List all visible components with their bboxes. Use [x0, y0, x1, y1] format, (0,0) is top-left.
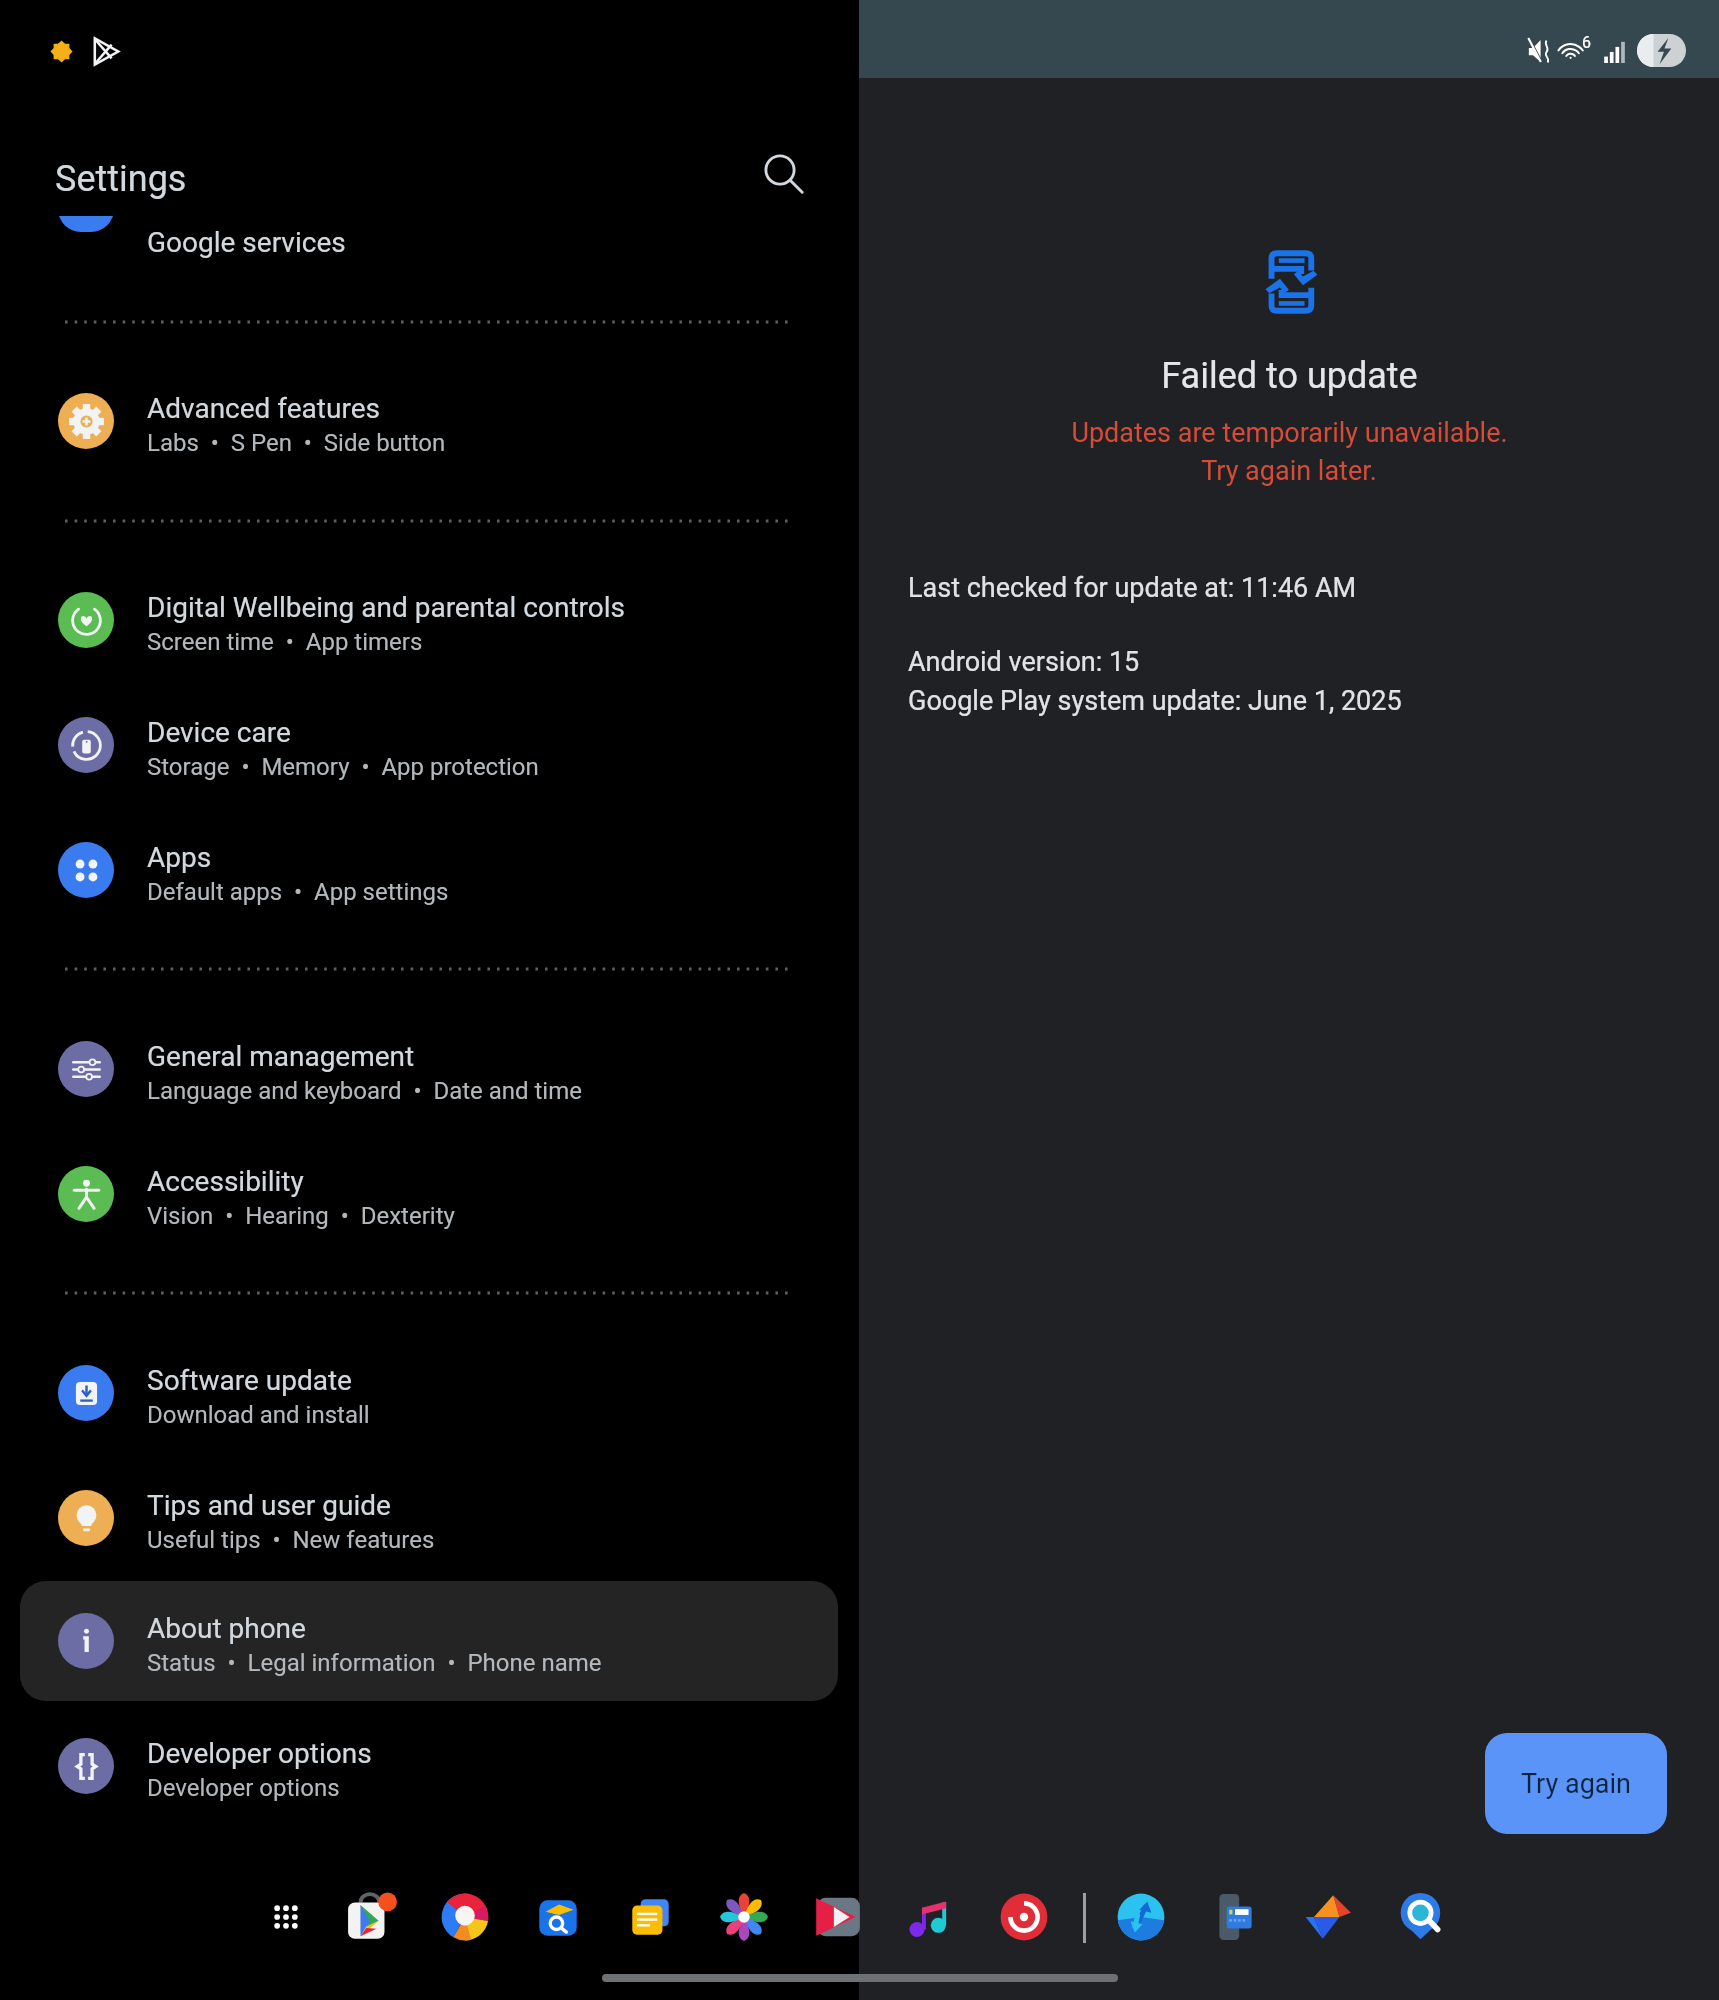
button[interactable]: Try again [1485, 1733, 1667, 1834]
button[interactable]: About phone [0, 1591, 859, 1691]
staticText: Tips and user guide [147, 1489, 391, 1522]
button[interactable]: Browser [431, 1883, 499, 1951]
staticText: Default apps • App settings [147, 878, 449, 906]
button[interactable]: Developer options [0, 1716, 859, 1816]
button[interactable] [20, 1581, 838, 1701]
button[interactable]: Advanced features [0, 371, 859, 471]
staticText: Storage • Memory • App protection [147, 753, 539, 781]
staticText: Download and install [147, 1401, 370, 1429]
button[interactable]: Apps [0, 820, 859, 920]
staticText: Vision • Hearing • Dexterity [147, 1202, 455, 1230]
button[interactable]: Device care [0, 695, 859, 795]
staticText: General management [147, 1040, 415, 1073]
button[interactable]: Accessibility [0, 1144, 859, 1244]
staticText: About phone [147, 1612, 306, 1645]
button[interactable]: Digital Wellbeing and parental controls [0, 570, 859, 670]
button[interactable]: Play Store [338, 1883, 406, 1951]
staticText: Device care [147, 716, 291, 749]
staticText: Language and keyboard • Date and time [147, 1077, 582, 1105]
button[interactable]: Search [753, 143, 813, 203]
staticText: Try again [1521, 1768, 1631, 1800]
staticText: Useful tips • New features [147, 1526, 435, 1554]
button[interactable]: Software update [0, 1343, 859, 1443]
button[interactable]: Photos [710, 1883, 778, 1951]
button[interactable]: YouTube [803, 1883, 871, 1951]
staticText: Screen time • App timers [147, 628, 423, 656]
staticText: 6 [1582, 33, 1591, 52]
staticText: Labs • S Pen • Side button [147, 429, 446, 457]
staticText: Developer options [147, 1774, 340, 1802]
button[interactable]: Maps [1388, 1883, 1456, 1951]
button[interactable]: Transfer [1107, 1883, 1175, 1951]
button[interactable]: Podcasts [990, 1883, 1058, 1951]
staticText: Last checked for update at: 11:46 AM [908, 572, 1357, 604]
staticText: Status • Legal information • Phone name [147, 1649, 602, 1677]
button[interactable]: Pay [1201, 1883, 1269, 1951]
button[interactable]: Files [524, 1883, 592, 1951]
staticText: Failed to update [1161, 355, 1418, 397]
button[interactable]: General management [0, 1019, 859, 1119]
button[interactable]: Files Go [1294, 1883, 1362, 1951]
staticText: Developer options [147, 1737, 372, 1770]
staticText: Settings [55, 158, 187, 200]
staticText: Accessibility [147, 1165, 304, 1198]
staticText: Updates are temporarily unavailable. [1071, 417, 1508, 449]
staticText: Google services [147, 226, 346, 259]
staticText: Apps [147, 841, 212, 874]
staticText: Google Play system update: June 1, 2025 [908, 685, 1402, 717]
button[interactable]: Tips and user guide [0, 1468, 859, 1568]
button[interactable]: Notes [617, 1883, 685, 1951]
staticText: Software update [147, 1364, 352, 1397]
button[interactable]: Music [896, 1883, 964, 1951]
button[interactable]: All apps [252, 1883, 320, 1951]
staticText: Advanced features [147, 392, 380, 425]
staticText: Digital Wellbeing and parental controls [147, 591, 626, 624]
staticText: Android version: 15 [908, 646, 1140, 678]
staticText: Try again later. [1201, 455, 1377, 487]
